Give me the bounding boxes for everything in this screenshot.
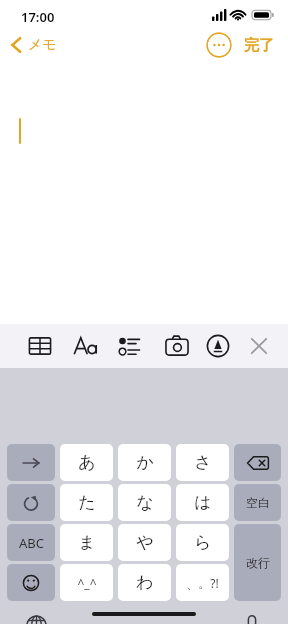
staticText: 、。?! xyxy=(186,575,219,591)
staticText: 17:00 xyxy=(21,8,55,26)
button[interactable]: Switch keyboard xyxy=(18,608,54,624)
button[interactable]: ABC xyxy=(7,524,55,561)
button[interactable]: 、。?! xyxy=(176,564,229,601)
button[interactable]: は xyxy=(176,484,229,521)
button[interactable]: Move cursor right xyxy=(7,444,55,481)
button[interactable]: Checklist xyxy=(111,324,149,368)
staticText: は xyxy=(194,492,212,513)
button[interactable]: か xyxy=(118,444,171,481)
staticText: 空白 xyxy=(246,495,270,510)
button[interactable]: Dictation xyxy=(234,608,270,624)
button[interactable]: わ xyxy=(118,564,171,601)
button[interactable]: ^_^ xyxy=(60,564,113,601)
staticText: わ xyxy=(136,572,154,593)
button[interactable]: Markup xyxy=(199,324,237,368)
staticText: た xyxy=(78,492,96,513)
button[interactable]: た xyxy=(60,484,113,521)
button[interactable]: Table xyxy=(21,324,59,368)
staticText: ま xyxy=(78,532,96,553)
staticText: メモ xyxy=(28,36,57,54)
button[interactable]: More options xyxy=(206,32,232,58)
button[interactable]: Camera xyxy=(158,324,196,368)
button[interactable]: 空白 xyxy=(234,484,281,521)
staticText: 完了 xyxy=(244,36,274,55)
staticText: 改行 xyxy=(246,555,270,570)
button[interactable]: Close keyboard xyxy=(240,324,278,368)
button[interactable]: や xyxy=(118,524,171,561)
button[interactable]: Text format xyxy=(66,324,104,368)
staticText: か xyxy=(136,452,154,473)
staticText: ら xyxy=(194,532,212,553)
staticText: さ xyxy=(194,452,212,473)
staticText: や xyxy=(136,532,154,553)
staticText: ^_^ xyxy=(77,575,97,591)
button[interactable]: 完了 xyxy=(242,33,276,58)
staticText: ABC xyxy=(19,534,44,552)
button[interactable]: Undo xyxy=(7,484,55,521)
staticText: な xyxy=(136,492,154,513)
button[interactable]: ま xyxy=(60,524,113,561)
button[interactable]: さ xyxy=(176,444,229,481)
button[interactable]: Emoji xyxy=(7,564,55,601)
button[interactable]: あ xyxy=(60,444,113,481)
button[interactable]: 改行 xyxy=(234,524,281,601)
button[interactable]: な xyxy=(118,484,171,521)
button[interactable] xyxy=(0,66,288,324)
button[interactable]: ら xyxy=(176,524,229,561)
staticText: あ xyxy=(78,452,96,473)
button[interactable]: メモ xyxy=(6,32,61,58)
button[interactable]: Delete xyxy=(234,444,281,481)
